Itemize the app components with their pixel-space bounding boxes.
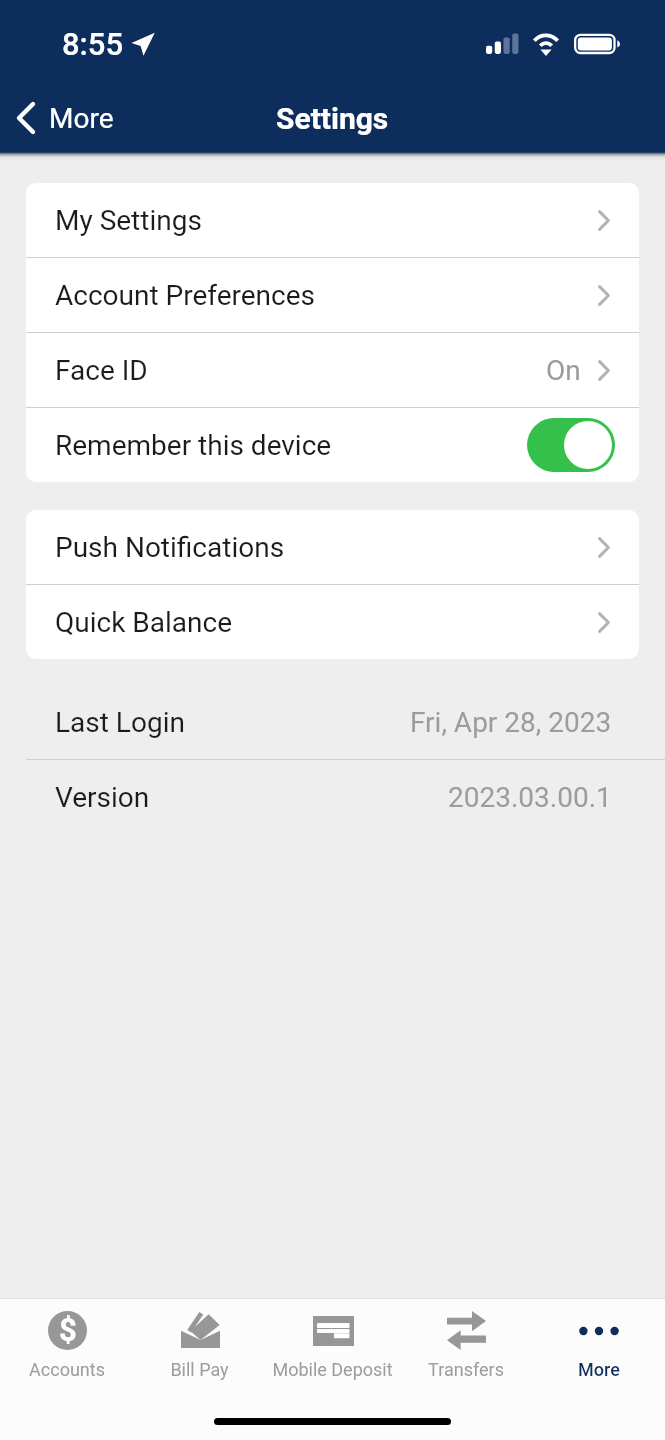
staticText: $ [59,1312,77,1348]
staticText: Push Notifications [55,531,285,564]
staticText: Version [55,781,150,814]
button[interactable]: Remember this device toggle, on [527,418,615,472]
button[interactable]: Account Preferences [26,258,639,332]
button[interactable]: My Settings [26,183,639,257]
staticText: Fri, Apr 28, 2023 [410,706,612,739]
button[interactable]: Bill Pay [133,1299,266,1389]
staticText: Remember this device [55,429,332,462]
staticText: 8:55 [62,26,124,62]
staticText: More [578,1359,620,1380]
staticText: Quick Balance [55,606,232,639]
staticText: Bill Pay [170,1359,229,1380]
button[interactable]: $ [0,1299,133,1389]
staticText: Transfers [428,1359,504,1380]
staticText: Last Login [55,706,185,739]
button[interactable]: More [532,1299,665,1389]
staticText: My Settings [55,204,202,237]
staticText: Accounts [29,1359,105,1380]
button[interactable]: Face ID [26,333,639,407]
button[interactable]: Mobile Deposit [266,1299,399,1389]
staticText: On [546,354,581,387]
staticText: Account Preferences [55,279,316,312]
staticText: More [49,102,114,135]
button[interactable]: Push Notifications [26,510,639,584]
button[interactable]: Quick Balance [26,585,639,659]
other: Back [17,102,35,134]
staticText: Mobile Deposit [272,1359,393,1380]
button[interactable]: Back [0,90,128,152]
staticText: Face ID [55,354,148,387]
button[interactable]: Transfers [399,1299,532,1389]
staticText: 2023.03.00.1 [448,781,612,814]
staticText: Settings [276,101,389,136]
